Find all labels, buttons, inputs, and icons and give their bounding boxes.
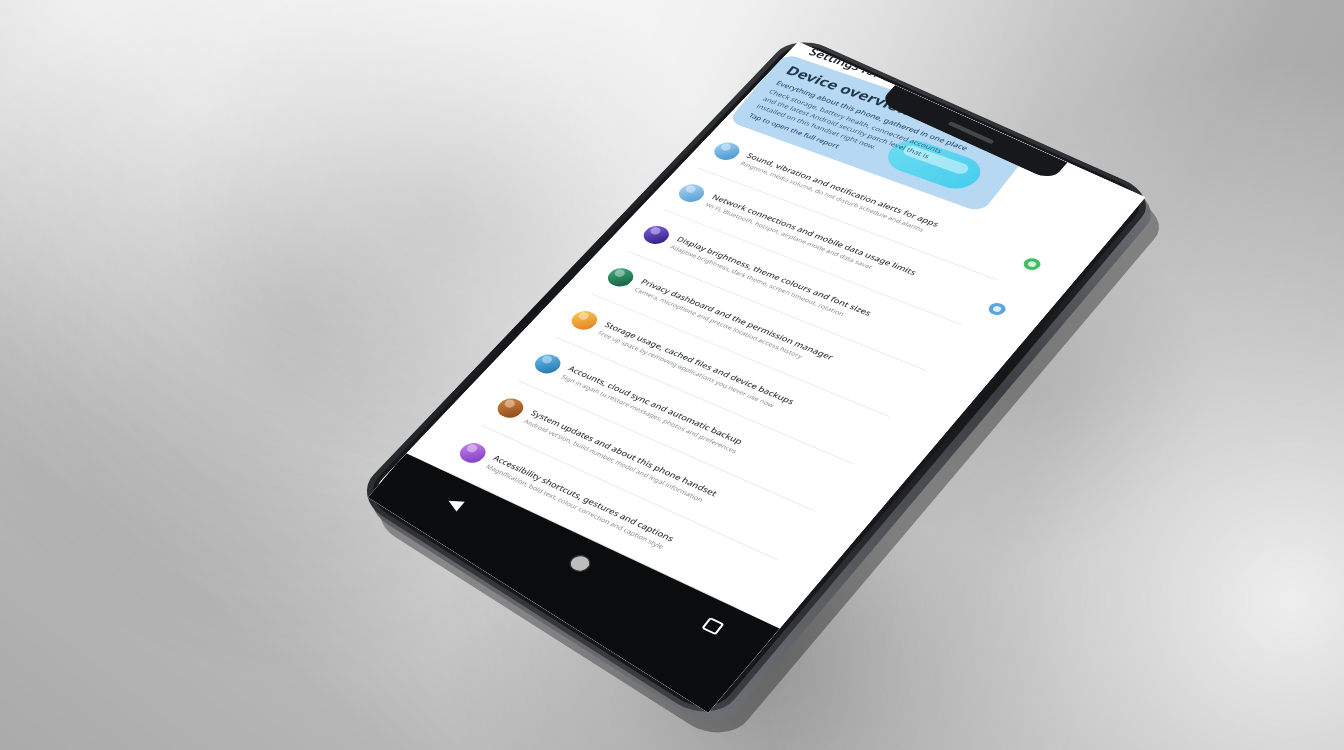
button[interactable]: Accounts, cloud sync and automatic backu… [28, 506, 376, 566]
button[interactable]: Network connections and mobile data usag… [28, 262, 376, 322]
button[interactable]: Device overview [32, 92, 292, 196]
button[interactable]: Sound, vibration and notification alerts… [28, 200, 376, 261]
button[interactable]: Accessibility shortcuts, gestures and ca… [28, 628, 376, 688]
button[interactable]: Storage usage, cached files and device b… [28, 445, 376, 505]
button[interactable]: System updates and about this phone hand… [28, 567, 376, 627]
staticText: Storage usage, cached files and device b… [72, 464, 264, 476]
button[interactable]: Privacy dashboard and the permission man… [28, 384, 376, 444]
